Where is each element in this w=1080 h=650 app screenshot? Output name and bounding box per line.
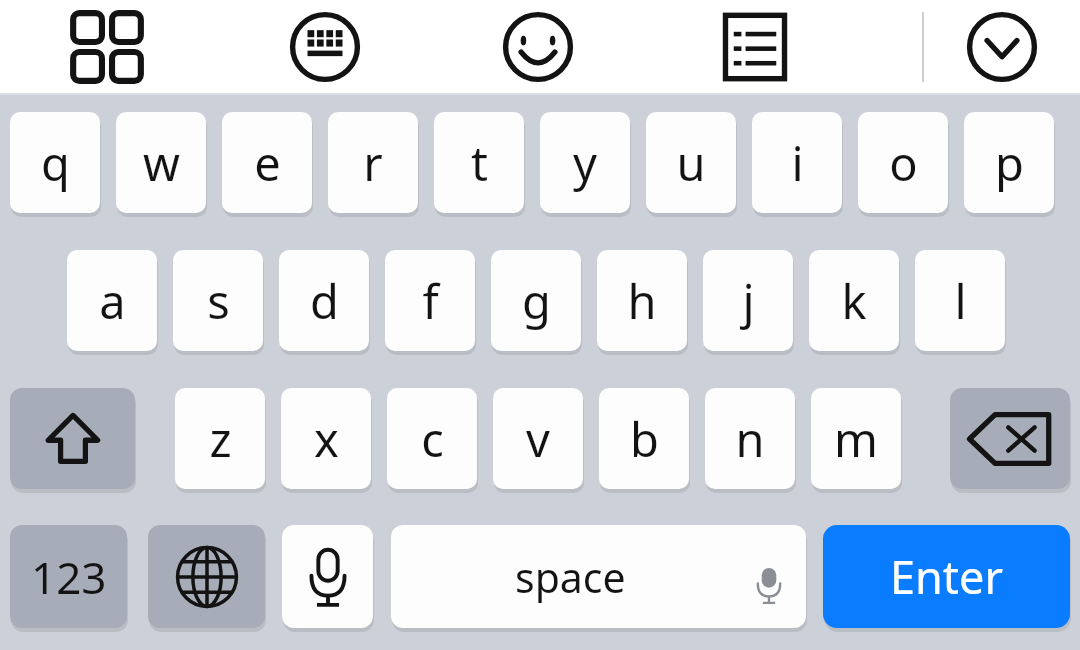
staticText: g — [522, 269, 551, 333]
staticText: 123 — [31, 547, 107, 607]
button[interactable]: Hide keyboard — [959, 4, 1045, 90]
button[interactable]: Backspace — [950, 388, 1070, 489]
button[interactable]: l — [915, 250, 1005, 351]
button[interactable]: m — [811, 388, 901, 489]
staticText: z — [209, 407, 232, 471]
staticText: n — [735, 407, 765, 471]
button[interactable]: q — [10, 112, 100, 213]
staticText: v — [526, 407, 550, 471]
staticText: x — [314, 407, 339, 471]
button[interactable]: space — [391, 525, 806, 628]
staticText: m — [834, 407, 878, 471]
button[interactable]: w — [116, 112, 206, 213]
button[interactable]: b — [599, 388, 689, 489]
button[interactable]: v — [493, 388, 583, 489]
button[interactable]: Change language — [148, 525, 265, 628]
button[interactable]: f — [385, 250, 475, 351]
button[interactable]: n — [705, 388, 795, 489]
staticText: h — [627, 269, 657, 333]
button[interactable]: Keyboard layouts — [64, 4, 150, 90]
button[interactable]: i — [752, 112, 842, 213]
button[interactable]: Enter — [823, 525, 1070, 628]
button[interactable]: e — [222, 112, 312, 213]
staticText: r — [363, 131, 383, 195]
staticText: y — [573, 131, 597, 195]
button[interactable]: Keyboard — [282, 4, 368, 90]
staticText: d — [310, 269, 339, 333]
button[interactable]: p — [964, 112, 1054, 213]
button[interactable]: t — [434, 112, 524, 213]
button[interactable]: Emoji — [495, 4, 581, 90]
staticText: e — [254, 131, 281, 195]
staticText: s — [207, 269, 230, 333]
staticText: p — [995, 131, 1024, 195]
button[interactable]: y — [540, 112, 630, 213]
staticText: space — [515, 549, 626, 605]
button[interactable]: k — [809, 250, 899, 351]
staticText: t — [471, 131, 488, 195]
button[interactable]: o — [858, 112, 948, 213]
staticText: Enter — [890, 546, 1004, 607]
button[interactable]: 123 — [10, 525, 127, 628]
staticText: k — [841, 269, 867, 333]
button[interactable]: d — [279, 250, 369, 351]
button[interactable]: a — [67, 250, 157, 351]
staticText: a — [99, 269, 126, 333]
staticText: c — [421, 407, 444, 471]
button[interactable]: z — [175, 388, 265, 489]
staticText: q — [41, 131, 70, 195]
button[interactable]: g — [491, 250, 581, 351]
button[interactable]: Shift — [10, 388, 135, 489]
button[interactable]: c — [387, 388, 477, 489]
button[interactable]: u — [646, 112, 736, 213]
staticText: i — [791, 131, 804, 195]
staticText: b — [630, 407, 659, 471]
button[interactable]: j — [703, 250, 793, 351]
staticText: f — [422, 269, 439, 333]
staticText: o — [889, 131, 918, 195]
staticText: l — [954, 269, 967, 333]
staticText: u — [676, 131, 706, 195]
button[interactable]: h — [597, 250, 687, 351]
staticText: j — [742, 269, 755, 333]
button[interactable]: x — [281, 388, 371, 489]
button[interactable]: Clipboard — [712, 4, 798, 90]
button[interactable]: r — [328, 112, 418, 213]
button[interactable]: Voice input — [282, 525, 373, 628]
button[interactable]: s — [173, 250, 263, 351]
staticText: w — [143, 131, 180, 195]
